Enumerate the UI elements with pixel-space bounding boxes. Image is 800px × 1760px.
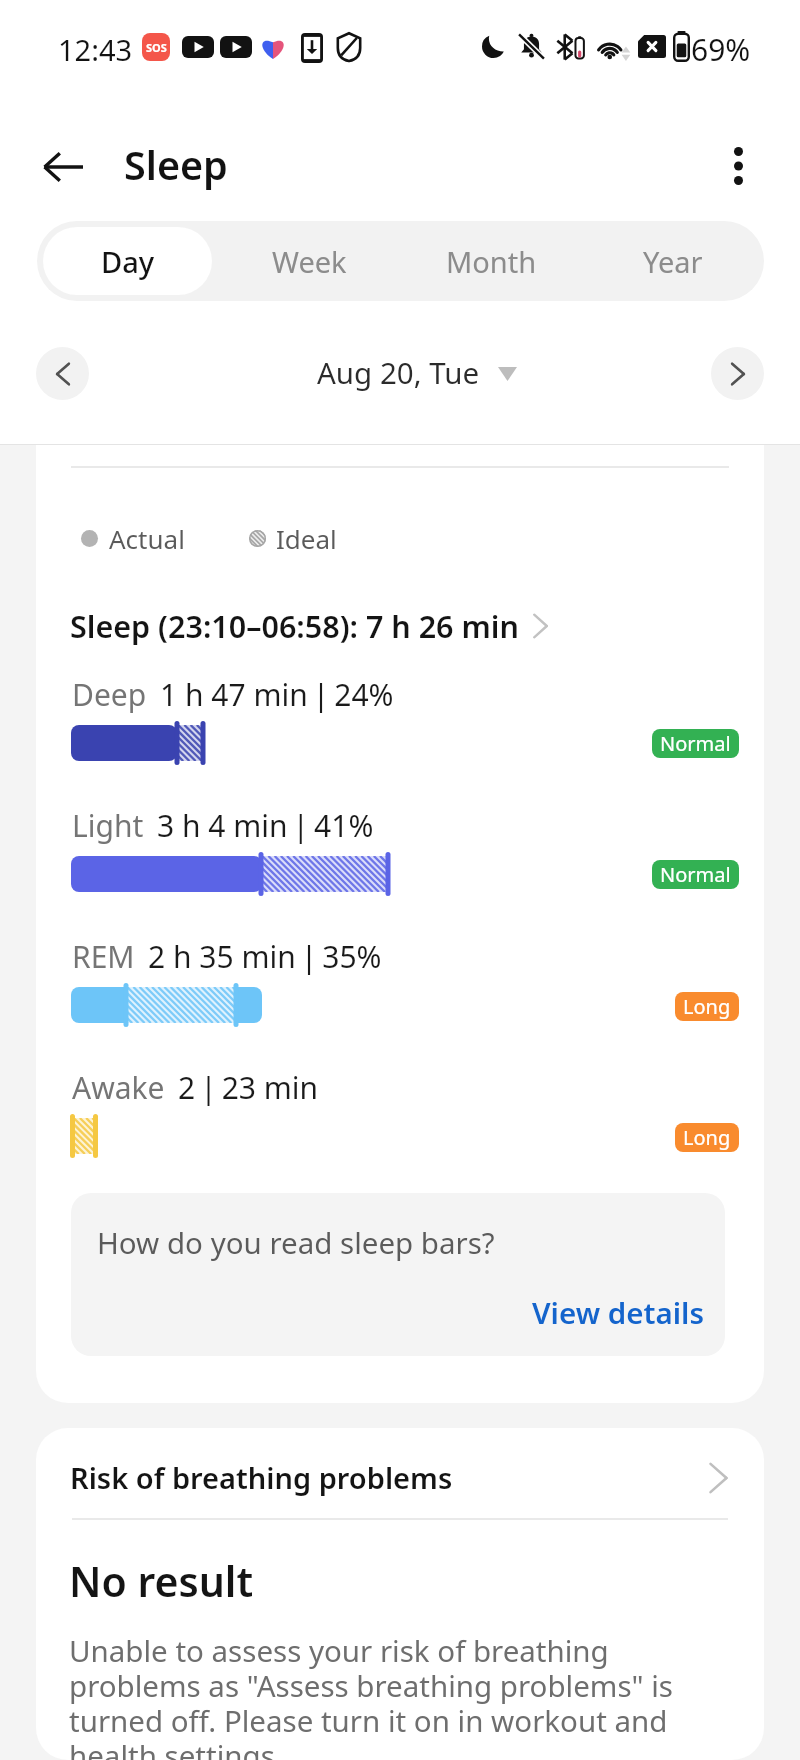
button[interactable]: Long (683, 992, 731, 1021)
staticText: 3 h 4 min | 41% (157, 805, 374, 846)
button[interactable]: Next day (711, 347, 764, 400)
staticText: Week (272, 242, 347, 281)
button[interactable]: Risk of breathing problems (70, 1458, 728, 1497)
staticText: SOS (146, 40, 167, 55)
staticText: 69% (691, 29, 751, 70)
staticText: 2 | 23 min (178, 1067, 319, 1108)
staticText: Light (72, 805, 144, 846)
button[interactable]: Previous day (36, 347, 89, 400)
staticText: Deep (72, 674, 147, 715)
button[interactable]: Normal (660, 860, 731, 889)
staticText: Actual (109, 521, 185, 556)
staticText: Normal (660, 730, 731, 757)
staticText: 12:43 (58, 30, 133, 69)
staticText: Risk of breathing problems (70, 1458, 453, 1497)
staticText: Unable to assess your risk of breathing … (69, 1630, 689, 1760)
button[interactable]: Week (224, 227, 394, 295)
staticText: Normal (660, 861, 731, 888)
button[interactable]: Long (683, 1123, 731, 1152)
staticText: 2 h 35 min | 35% (148, 936, 382, 977)
staticText: Ideal (276, 521, 337, 556)
staticText: REM (72, 936, 135, 977)
staticText: No result (69, 1553, 254, 1609)
staticText: Sleep (23:10–06:58): 7 h 26 min (70, 605, 519, 647)
staticText: Aug 20, Tue (317, 352, 480, 392)
button[interactable]: Navigate up (30, 134, 96, 200)
staticText: Month (446, 242, 537, 281)
staticText: Long (683, 993, 731, 1020)
button[interactable]: Sleep (23:10–06:58): 7 h 26 min (70, 605, 548, 647)
staticText: Year (643, 242, 703, 281)
button[interactable]: More options (705, 133, 771, 199)
button[interactable]: Year (588, 227, 758, 295)
staticText: Awake (72, 1067, 165, 1108)
staticText: View details (532, 1292, 704, 1332)
staticText: 1 h 47 min | 24% (160, 674, 394, 715)
staticText: Sleep (124, 138, 228, 192)
button[interactable]: How do you read sleep bars? (71, 1193, 725, 1356)
button[interactable]: Month (406, 227, 576, 295)
button[interactable]: Aug 20, Tue (280, 347, 520, 400)
staticText: How do you read sleep bars? (97, 1222, 495, 1262)
staticText: Day (101, 242, 155, 281)
staticText: Long (683, 1124, 731, 1151)
button[interactable]: Normal (660, 729, 731, 758)
button[interactable]: Day (43, 227, 212, 295)
